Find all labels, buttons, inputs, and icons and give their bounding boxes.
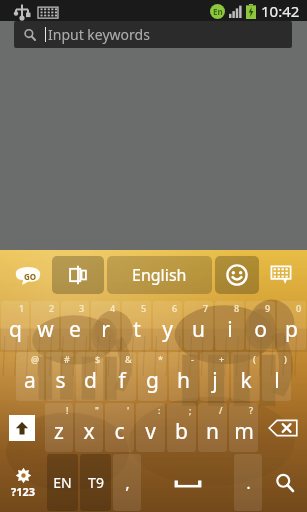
- staticText: .: [246, 471, 251, 494]
- staticText: 2: [49, 302, 55, 314]
- staticText: ?123: [11, 484, 36, 499]
- button[interactable]: 9: [246, 301, 275, 350]
- staticText: English: [132, 264, 187, 286]
- staticText: e: [69, 315, 81, 344]
- staticText: !: [66, 404, 69, 416]
- staticText: q: [9, 315, 22, 344]
- staticText: l: [274, 366, 280, 395]
- staticText: -: [191, 353, 194, 365]
- button[interactable]: Backspace: [261, 404, 305, 451]
- button[interactable]: 8: [215, 301, 244, 350]
- button[interactable]: ?123: [2, 455, 44, 510]
- staticText: 9: [265, 302, 271, 314]
- staticText: 1: [19, 302, 25, 314]
- button[interactable]: ;: [167, 403, 196, 452]
- staticText: T9: [88, 473, 104, 492]
- button[interactable]: ': [105, 403, 134, 452]
- staticText: EN: [53, 473, 72, 492]
- button[interactable]: 5: [122, 301, 151, 350]
- button[interactable]: ": [75, 403, 103, 452]
- button[interactable]: 6: [153, 301, 182, 350]
- button[interactable]: (: [231, 352, 260, 401]
- staticText: ;: [189, 404, 192, 416]
- button[interactable]: 1: [1, 301, 29, 350]
- staticText: z: [54, 417, 64, 446]
- staticText: ': [127, 404, 130, 416]
- button[interactable]: ,: [113, 454, 141, 511]
- button[interactable]: 2: [31, 301, 59, 350]
- staticText: /: [219, 404, 223, 416]
- button[interactable]: Input keywords: [14, 21, 292, 48]
- button[interactable]: 0: [277, 301, 306, 350]
- staticText: n: [206, 417, 219, 446]
- button[interactable]: +: [200, 352, 229, 401]
- button[interactable]: *: [138, 352, 167, 401]
- staticText: c: [114, 417, 125, 446]
- button[interactable]: -: [169, 352, 198, 401]
- staticText: 8: [234, 302, 240, 314]
- staticText: f: [118, 366, 126, 395]
- staticText: *: [158, 353, 163, 365]
- button[interactable]: :: [136, 403, 165, 452]
- staticText: x: [83, 417, 95, 446]
- button[interactable]: @: [16, 352, 44, 401]
- staticText: Input keywords: [48, 25, 150, 44]
- button[interactable]: Shift: [2, 404, 42, 451]
- staticText: y: [162, 315, 173, 344]
- button[interactable]: .: [234, 454, 262, 511]
- button[interactable]: English: [107, 256, 212, 294]
- staticText: r: [101, 315, 110, 344]
- button[interactable]: &: [107, 352, 136, 401]
- staticText: 0: [296, 302, 302, 314]
- button[interactable]: 7: [184, 301, 213, 350]
- staticText: 10:42: [261, 1, 300, 21]
- button[interactable]: 3: [61, 301, 89, 350]
- staticText: @: [31, 353, 40, 365]
- button[interactable]: !: [45, 403, 73, 452]
- staticText: m: [234, 417, 254, 446]
- staticText: (: [253, 353, 256, 365]
- staticText: :: [158, 404, 161, 416]
- staticText: p: [285, 315, 298, 344]
- button[interactable]: 4: [91, 301, 120, 350]
- button[interactable]: Hide keyboard: [259, 250, 303, 300]
- staticText: +: [219, 353, 225, 365]
- staticText: j: [212, 366, 218, 395]
- staticText: u: [192, 315, 205, 344]
- button[interactable]: /: [198, 403, 227, 452]
- staticText: k: [240, 366, 252, 395]
- staticText: v: [145, 417, 156, 446]
- button[interactable]: ?: [229, 403, 258, 452]
- staticText: ?: [249, 404, 254, 416]
- staticText: ): [284, 353, 287, 365]
- staticText: h: [177, 366, 190, 395]
- staticText: $: [95, 353, 101, 365]
- staticText: 3: [79, 302, 85, 314]
- staticText: 6: [172, 302, 178, 314]
- button[interactable]: ): [262, 352, 291, 401]
- button[interactable]: EN: [47, 454, 78, 511]
- staticText: #: [64, 353, 70, 365]
- button[interactable]: Theme: [52, 256, 104, 294]
- button[interactable]: $: [76, 352, 105, 401]
- staticText: ": [95, 404, 99, 416]
- staticText: ,: [125, 471, 130, 494]
- staticText: g: [146, 366, 159, 395]
- staticText: &: [125, 353, 132, 365]
- staticText: d: [84, 366, 97, 395]
- staticText: b: [175, 417, 188, 446]
- staticText: t: [133, 315, 141, 344]
- staticText: a: [24, 366, 36, 395]
- button[interactable]: Space: [144, 455, 231, 510]
- staticText: i: [227, 315, 233, 344]
- button[interactable]: Search: [265, 455, 305, 510]
- staticText: s: [55, 366, 66, 395]
- staticText: w: [37, 315, 54, 344]
- button[interactable]: GO Keyboard menu: [4, 250, 52, 300]
- staticText: o: [254, 315, 267, 344]
- staticText: En: [213, 6, 223, 17]
- button[interactable]: Emoji: [215, 256, 259, 294]
- button[interactable]: #: [46, 352, 74, 401]
- staticText: GO: [24, 271, 37, 282]
- button[interactable]: T9: [80, 454, 111, 511]
